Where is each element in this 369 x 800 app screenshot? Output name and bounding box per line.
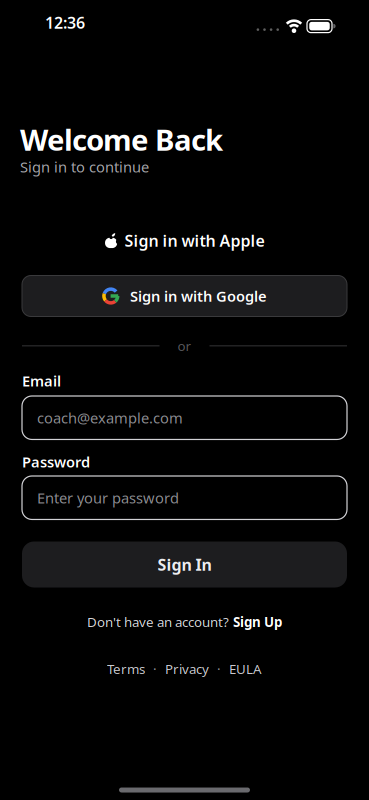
- staticText: or: [177, 337, 191, 355]
- button[interactable]: Terms: [107, 660, 145, 678]
- staticText: Email: [22, 371, 61, 390]
- staticText: Welcome Back: [20, 120, 223, 159]
- staticText: ·: [217, 660, 221, 678]
- button[interactable]: Sign in with Apple: [22, 219, 347, 262]
- staticText: Don't have an account?: [87, 613, 229, 631]
- staticText: ·: [153, 660, 157, 678]
- button[interactable]: Enter your password: [22, 476, 347, 519]
- button[interactable]: Privacy: [165, 660, 209, 678]
- staticText: Terms: [107, 660, 145, 678]
- button[interactable]: Sign in with Google: [22, 275, 347, 316]
- staticText: coach@example.com: [37, 408, 183, 427]
- button[interactable]: Sign Up: [233, 613, 282, 631]
- button[interactable]: Sign In: [22, 541, 347, 587]
- staticText: EULA: [229, 660, 262, 678]
- staticText: Sign In: [157, 554, 211, 575]
- staticText: 12:36: [45, 12, 85, 33]
- button[interactable]: EULA: [229, 660, 262, 678]
- staticText: Sign in with Apple: [124, 230, 264, 251]
- button[interactable]: coach@example.com: [22, 396, 347, 439]
- staticText: Sign in with Google: [130, 286, 267, 306]
- staticText: Sign Up: [233, 613, 282, 631]
- staticText: Password: [22, 452, 90, 471]
- staticText: Sign in to continue: [20, 157, 149, 176]
- staticText: Enter your password: [37, 488, 179, 507]
- staticText: Privacy: [165, 660, 209, 678]
